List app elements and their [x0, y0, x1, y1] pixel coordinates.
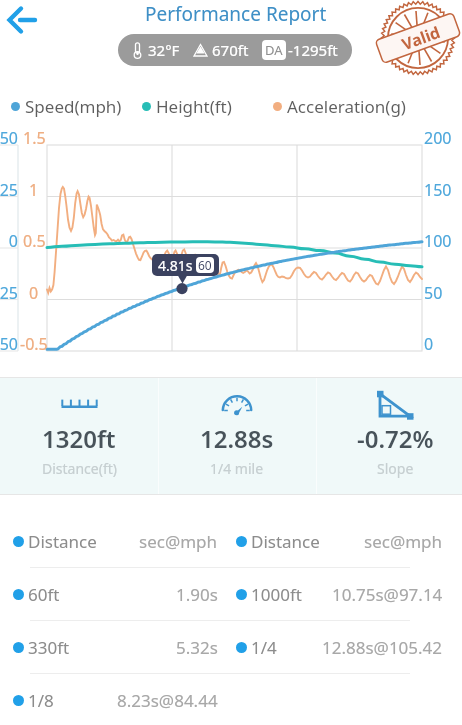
staticText: sec@mph: [364, 530, 443, 553]
staticText: 60: [198, 257, 212, 273]
staticText: 50: [0, 127, 18, 147]
staticText: 0.5: [23, 230, 46, 250]
staticText: Valid: [399, 21, 444, 55]
staticText: 5.32s: [176, 636, 218, 659]
staticText: 32°F: [148, 40, 180, 60]
button[interactable]: -0.72%: [316, 378, 462, 494]
staticText: 1.5: [23, 127, 46, 147]
staticText: 12.88s@105.42: [322, 636, 443, 659]
staticText: Distance: [251, 530, 320, 553]
staticText: Performance Report: [145, 1, 327, 25]
staticText: 12.88s: [200, 422, 274, 455]
staticText: 1000ft: [251, 583, 302, 606]
staticText: -25: [0, 282, 18, 302]
staticText: Slope: [377, 459, 414, 478]
staticText: 0: [8, 230, 18, 250]
staticText: 150: [424, 179, 452, 199]
staticText: -50: [0, 333, 18, 353]
button[interactable]: Back: [0, 0, 44, 40]
button[interactable]: 12.88s: [158, 378, 316, 494]
staticText: sec@mph: [139, 530, 218, 553]
staticText: -1295ft: [288, 40, 338, 60]
staticText: 0: [29, 282, 39, 302]
staticText: 60ft: [28, 583, 60, 606]
staticText: Acceleration(g): [287, 95, 406, 118]
staticText: Speed(mph): [25, 95, 122, 118]
staticText: Distance(ft): [42, 459, 117, 478]
staticText: 4.81s: [158, 256, 193, 275]
staticText: -0.5: [20, 333, 48, 353]
staticText: -0.72%: [357, 422, 434, 455]
button[interactable]: 1320ft: [0, 378, 158, 494]
staticText: 0: [424, 333, 434, 353]
staticText: 1/8: [28, 689, 54, 712]
button[interactable]: Distance: [0, 515, 462, 567]
staticText: 1320ft: [42, 422, 116, 455]
staticText: 1.90s: [176, 583, 218, 606]
staticText: 100: [424, 230, 452, 250]
staticText: 670ft: [212, 40, 249, 60]
button[interactable]: 1/8: [0, 674, 462, 725]
staticText: 10.75s@97.14: [332, 583, 443, 606]
button[interactable]: 60ft: [0, 568, 462, 620]
staticText: Distance: [28, 530, 97, 553]
staticText: DA: [265, 41, 283, 59]
staticText: 50: [424, 282, 443, 302]
staticText: 1: [29, 179, 39, 199]
staticText: 200: [424, 127, 452, 147]
staticText: 330ft: [28, 636, 70, 659]
button[interactable]: 32°F: [118, 34, 352, 66]
button[interactable]: 330ft: [0, 621, 462, 673]
staticText: 8.23s@84.44: [117, 689, 218, 712]
staticText: 25: [0, 179, 18, 199]
staticText: 1/4: [251, 636, 277, 659]
staticText: Height(ft): [156, 95, 232, 118]
staticText: 1/4 mile: [210, 459, 264, 478]
